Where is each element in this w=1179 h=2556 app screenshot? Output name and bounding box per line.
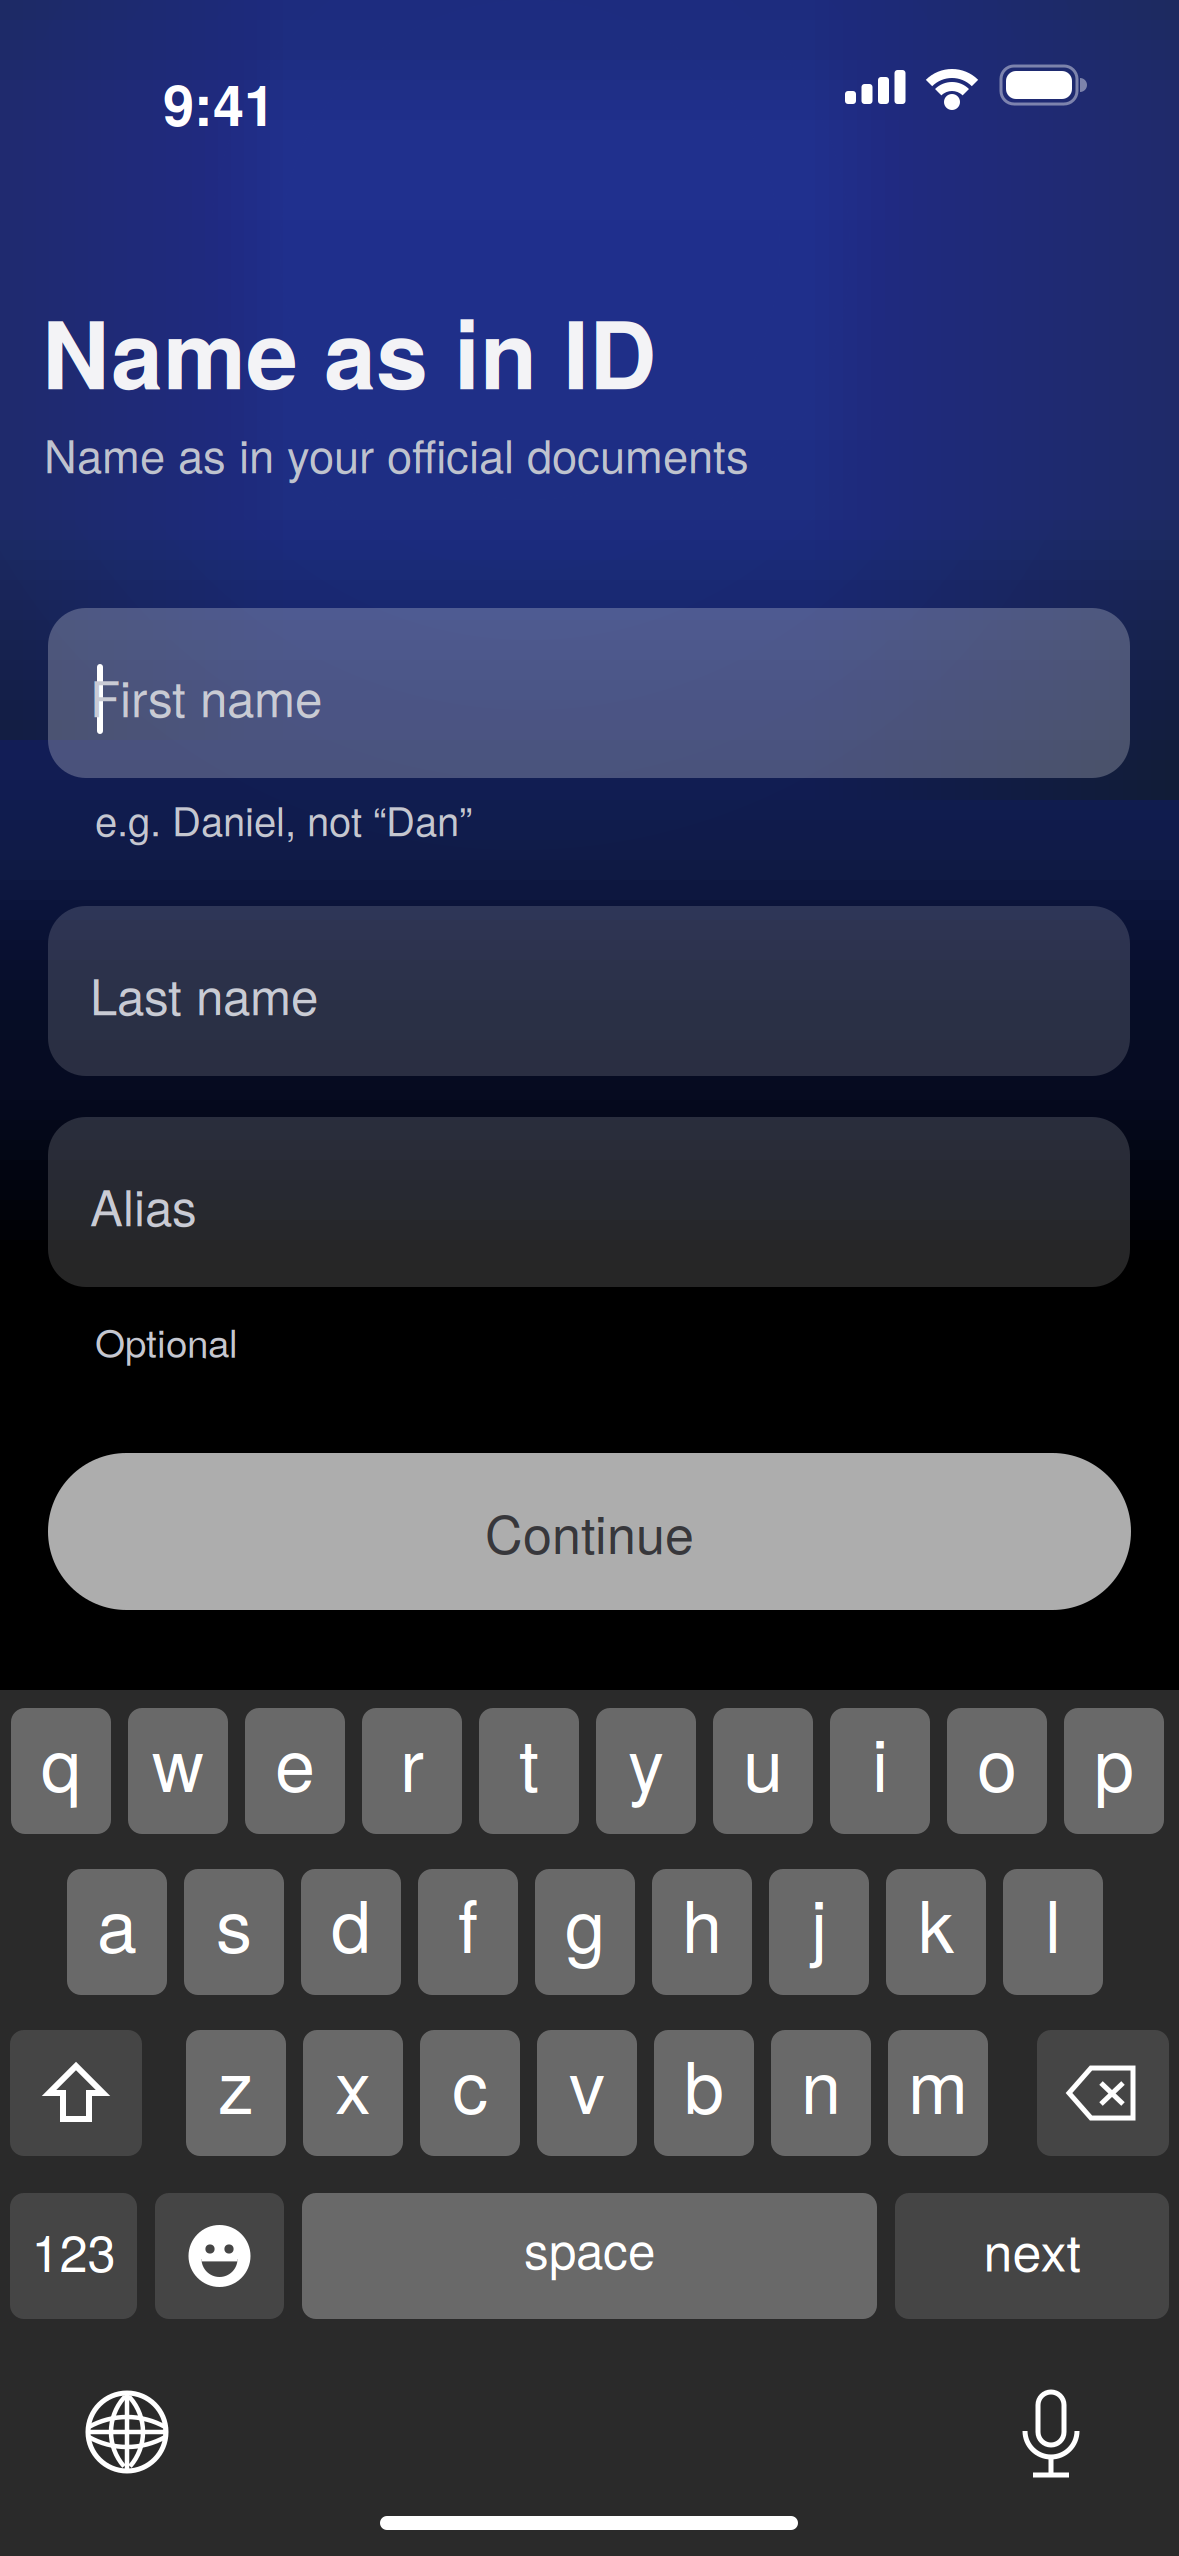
staticText: v — [569, 2033, 605, 2133]
staticText: m — [908, 2033, 968, 2133]
button[interactable]: Last name — [48, 906, 1130, 1076]
staticText: u — [743, 1711, 783, 1811]
staticText: s — [216, 1872, 252, 1972]
button[interactable]: h — [652, 1869, 752, 1995]
button[interactable]: 123 — [10, 2193, 137, 2319]
button[interactable]: l — [1003, 1869, 1103, 1995]
button[interactable]: p — [1064, 1708, 1164, 1834]
button[interactable]: m — [888, 2030, 988, 2156]
button[interactable]: e — [245, 1708, 345, 1834]
staticText: q — [41, 1711, 81, 1811]
staticText: t — [519, 1711, 539, 1811]
button[interactable]: Delete — [1037, 2030, 1169, 2156]
staticText: o — [977, 1711, 1017, 1811]
button[interactable]: Continue — [48, 1453, 1131, 1610]
button[interactable]: y — [596, 1708, 696, 1834]
button[interactable]: o — [947, 1708, 1047, 1834]
staticText: y — [628, 1711, 664, 1811]
button[interactable]: r — [362, 1708, 462, 1834]
staticText: Last name — [90, 960, 318, 1028]
staticText: c — [452, 2033, 488, 2133]
button[interactable]: g — [535, 1869, 635, 1995]
staticText: space — [524, 2214, 655, 2282]
button[interactable]: f — [418, 1869, 518, 1995]
button[interactable]: w — [128, 1708, 228, 1834]
button[interactable]: space — [302, 2193, 877, 2319]
button[interactable]: u — [713, 1708, 813, 1834]
button[interactable]: i — [830, 1708, 930, 1834]
button[interactable]: z — [186, 2030, 286, 2156]
staticText: First name — [90, 662, 322, 730]
staticText: n — [801, 2033, 841, 2133]
staticText: r — [400, 1711, 424, 1811]
button[interactable]: Next keyboard — [85, 2390, 169, 2474]
button[interactable]: n — [771, 2030, 871, 2156]
button[interactable]: b — [654, 2030, 754, 2156]
button[interactable]: Emoji — [155, 2193, 284, 2319]
button[interactable]: q — [11, 1708, 111, 1834]
staticText: f — [458, 1872, 478, 1972]
staticText: Name as in ID — [42, 286, 656, 416]
button[interactable]: d — [301, 1869, 401, 1995]
button[interactable]: next — [895, 2193, 1169, 2319]
staticText: i — [872, 1711, 888, 1811]
button[interactable]: c — [420, 2030, 520, 2156]
staticText: Alias — [90, 1171, 197, 1239]
staticText: l — [1045, 1872, 1061, 1972]
button[interactable]: Alias — [48, 1117, 1130, 1287]
staticText: e.g. Daniel, not “Dan” — [95, 791, 472, 847]
staticText: h — [682, 1872, 722, 1972]
staticText: e — [275, 1711, 315, 1811]
staticText: j — [811, 1872, 827, 1972]
staticText: Continue — [485, 1495, 694, 1568]
staticText: z — [218, 2033, 254, 2133]
button[interactable]: v — [537, 2030, 637, 2156]
staticText: Name as in your official documents — [44, 422, 749, 485]
staticText: a — [97, 1872, 137, 1972]
button[interactable]: First name — [48, 608, 1130, 778]
button[interactable]: Dictation — [1022, 2389, 1080, 2479]
staticText: 9:41 — [163, 64, 275, 142]
button[interactable]: a — [67, 1869, 167, 1995]
button[interactable]: x — [303, 2030, 403, 2156]
staticText: k — [918, 1872, 954, 1972]
staticText: d — [331, 1872, 371, 1972]
staticText: w — [152, 1711, 204, 1811]
staticText: Optional — [95, 1314, 238, 1368]
button[interactable]: Shift — [10, 2030, 142, 2156]
staticText: x — [335, 2033, 371, 2133]
button[interactable]: t — [479, 1708, 579, 1834]
button[interactable]: k — [886, 1869, 986, 1995]
staticText: next — [983, 2213, 1080, 2285]
button[interactable]: j — [769, 1869, 869, 1995]
staticText: p — [1094, 1711, 1134, 1811]
staticText: b — [684, 2033, 724, 2133]
button[interactable]: s — [184, 1869, 284, 1995]
staticText: g — [565, 1872, 605, 1972]
staticText: 123 — [31, 2215, 115, 2285]
